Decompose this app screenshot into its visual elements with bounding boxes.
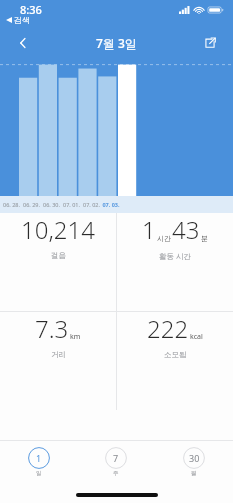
staticText: 07. 01.: [63, 201, 80, 208]
button[interactable]: 7: [77, 447, 155, 477]
staticText: 1: [36, 452, 42, 464]
staticText: 분: [201, 234, 208, 243]
staticText: 07. 02.: [83, 201, 100, 208]
button[interactable]: 222: [117, 312, 233, 359]
staticText: 검색: [14, 15, 30, 25]
button[interactable]: 1: [0, 447, 77, 477]
staticText: 10,214: [21, 213, 95, 246]
staticText: 06. 29.: [23, 201, 40, 208]
staticText: 일: [36, 470, 42, 477]
button[interactable]: Back: [8, 28, 38, 58]
staticText: 활동 시간: [159, 251, 191, 261]
staticText: 7월 3일: [96, 35, 137, 51]
staticText: 30: [189, 452, 200, 464]
staticText: km: [70, 332, 81, 342]
staticText: 거리: [51, 350, 66, 359]
button[interactable]: 7.3: [0, 312, 116, 359]
staticText: 시간: [157, 234, 171, 243]
staticText: 222: [147, 312, 189, 345]
staticText: 걸음: [51, 251, 66, 260]
button[interactable]: Share: [195, 28, 225, 58]
staticText: kcal: [190, 332, 203, 342]
staticText: 06. 28.: [3, 201, 20, 208]
staticText: 07. 03.: [102, 201, 120, 208]
staticText: 1: [142, 213, 156, 246]
staticText: 월: [191, 470, 197, 477]
staticText: 7.3: [35, 312, 69, 345]
staticText: 주: [113, 470, 119, 477]
staticText: 7: [113, 452, 119, 464]
staticText: 06. 30.: [43, 201, 60, 208]
staticText: 43: [172, 213, 200, 246]
staticText: 8:36: [20, 2, 42, 17]
button[interactable]: 30: [155, 447, 233, 477]
button[interactable]: 10,214: [0, 213, 116, 260]
button[interactable]: 1: [117, 213, 233, 261]
staticText: 소모됨: [164, 350, 187, 359]
